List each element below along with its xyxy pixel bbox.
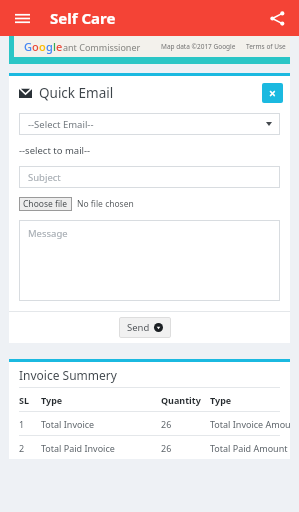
staticText: Message [28,227,68,240]
staticText: 26 [161,418,210,430]
staticText: × [269,85,276,101]
staticText: Choose file [23,198,68,210]
staticText: Total Paid Invoice [41,442,161,454]
staticText: Type [41,394,161,406]
staticText: Type [210,394,290,406]
button[interactable]: Open navigation menu [6,2,38,34]
button[interactable]: Message [19,220,280,301]
staticText: No file chosen [77,198,134,210]
staticText: G [24,39,32,54]
staticText: Subject [28,171,61,184]
staticText: 26 [161,442,210,454]
staticText: --select to mail-- [19,144,91,157]
staticText: 1 [19,418,41,430]
button[interactable]: Terms of Use [246,42,286,51]
staticText: Invoice Summery [19,367,117,383]
button[interactable]: Choose file [19,197,72,211]
staticText: --Select Email-- [28,118,94,131]
staticText: o [39,39,46,54]
staticText: Quantity [161,394,210,406]
staticText: e [56,39,63,54]
button[interactable]: Share [261,2,293,34]
staticText: SL [19,394,41,406]
button[interactable]: Close [262,83,283,103]
staticText: Total Paid Amount [210,442,290,454]
staticText: Self Care [50,8,116,28]
staticText: 2 [19,442,41,454]
staticText: Map data ©2017 Google [161,42,236,51]
staticText: Total Invoice Amount [210,418,290,430]
staticText: g [46,39,53,54]
staticText: Total Invoice [41,418,161,430]
button[interactable]: Subject [19,166,280,188]
button[interactable]: --Select Email-- [19,113,280,135]
staticText: Send [127,321,150,334]
staticText: l [53,39,56,54]
staticText: Quick Email [39,84,114,102]
staticText: o [32,39,39,54]
button[interactable]: Send [119,317,171,338]
staticText: ant Commissioner [63,41,141,53]
